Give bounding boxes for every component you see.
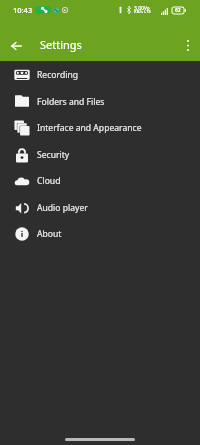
button[interactable]: Folders and Files <box>0 88 200 115</box>
staticText: Recording <box>37 69 78 81</box>
button[interactable]: Recording <box>0 61 200 88</box>
staticText: LTE <box>144 9 151 15</box>
staticText: 3.00 <box>134 5 144 12</box>
staticText: Cloud <box>37 175 61 187</box>
staticText: KB/s <box>134 9 144 15</box>
button[interactable]: Back <box>5 35 27 57</box>
staticText: Vo <box>144 5 150 11</box>
staticText: 62 <box>175 7 181 14</box>
staticText: Folders and Files <box>37 96 105 108</box>
staticText: Interface and Appearance <box>37 122 142 134</box>
staticText: Security <box>37 149 70 161</box>
staticText: 10:43 <box>13 5 33 15</box>
button[interactable]: Security <box>0 141 200 168</box>
button[interactable]: About <box>0 220 200 247</box>
button[interactable]: More options <box>177 34 199 56</box>
staticText: About <box>37 228 62 240</box>
button[interactable]: Cloud <box>0 167 200 194</box>
button[interactable]: Audio player <box>0 194 200 221</box>
button[interactable]: Interface and Appearance <box>0 114 200 141</box>
staticText: Settings <box>40 37 82 52</box>
staticText: Audio player <box>37 202 88 214</box>
